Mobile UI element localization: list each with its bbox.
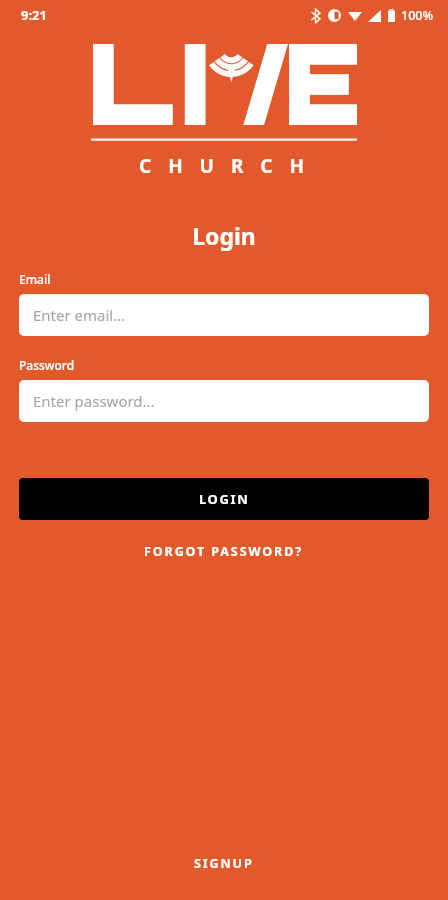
staticText: C H U R C H — [139, 153, 310, 179]
staticText: FORGOT PASSWORD? — [144, 543, 304, 560]
staticText: Email — [19, 271, 51, 287]
staticText: Login — [0, 220, 448, 251]
staticText: 9:21 — [21, 6, 47, 24]
staticText: Enter password... — [33, 391, 155, 411]
button[interactable]: LOGIN — [19, 478, 429, 520]
button[interactable]: Enter password... — [19, 380, 429, 422]
button[interactable]: SIGNUP — [0, 838, 448, 888]
staticText: SIGNUP — [194, 855, 254, 872]
staticText: LOGIN — [199, 490, 250, 508]
button[interactable]: FORGOT PASSWORD? — [19, 536, 429, 566]
staticText: Password — [19, 357, 75, 373]
staticText: Enter email... — [33, 305, 126, 325]
button[interactable]: Enter email... — [19, 294, 429, 336]
staticText: 100% — [401, 7, 434, 24]
